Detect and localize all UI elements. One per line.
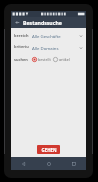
button[interactable]: Recents [61,157,86,170]
button[interactable]: Home [36,157,61,170]
button[interactable]: Back [11,17,23,28]
button[interactable]: GEHEN [37,145,60,154]
staticText: suchen [14,57,28,62]
staticText: Alle Domains [32,45,59,51]
button[interactable]: kriterium [11,44,86,51]
staticText: artikel [59,57,70,62]
staticText: Bestandssuche [23,19,62,26]
staticText: Alle Geschäfte [32,33,61,39]
button[interactable]: artikel [53,56,70,63]
staticText: bereich [14,33,29,38]
staticText: kriterium [14,44,32,51]
staticText: bestellt [38,57,51,62]
button[interactable]: Back [11,157,36,170]
button[interactable]: bestellt [32,56,51,63]
button[interactable]: bereich [11,32,86,39]
staticText: GEHEN [41,147,57,153]
